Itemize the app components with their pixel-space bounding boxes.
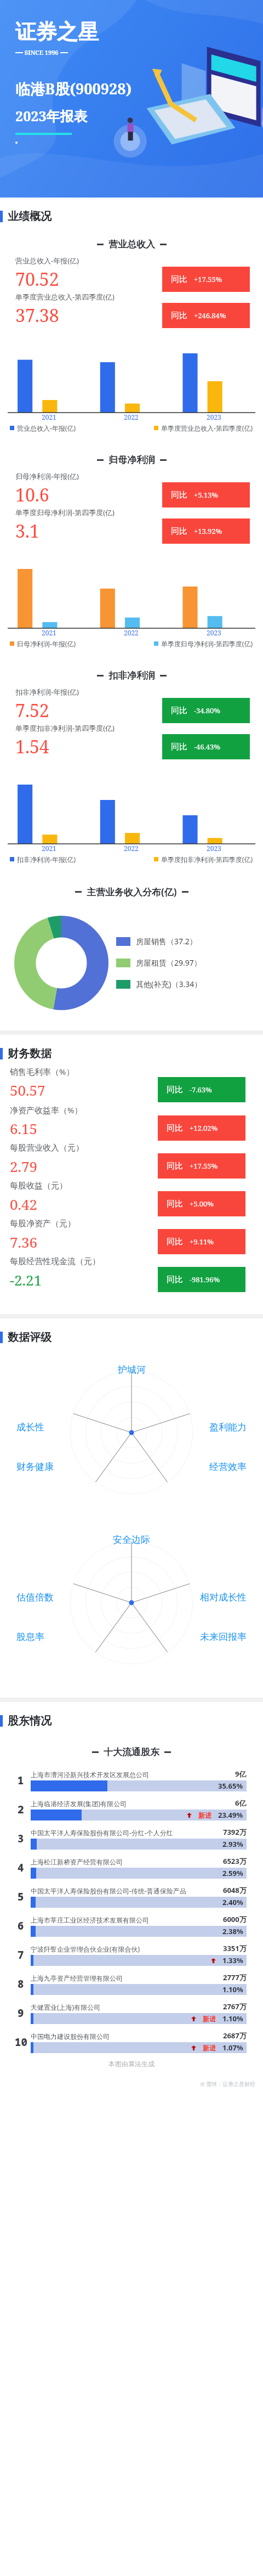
staticText: 50.57 [10,1080,45,1100]
staticText: 10.6 [15,483,49,507]
staticText: 相对成长性 [200,1592,247,1603]
button[interactable]: 同比 [162,698,250,723]
staticText: 1 [18,1773,24,1788]
staticText: 10 [15,2035,27,2049]
staticText: 估值倍数 [16,1592,54,1603]
staticText: 证券之星 [15,19,99,45]
staticText: +17.55% [194,274,222,284]
button[interactable]: 同比 [162,267,250,292]
staticText: +17.55% [190,1161,218,1171]
staticText: 同比 [167,1085,183,1095]
button[interactable]: 2 [11,1795,247,1824]
staticText: 单季度扣非净利润-第四季度(亿) [15,723,115,733]
staticText: 3351万 [223,1943,247,1953]
staticText: 1.10% [222,1985,243,1994]
button[interactable]: 6 [11,1911,247,1940]
staticText: -7.63% [190,1085,212,1095]
staticText: 盈利能力 [209,1422,247,1433]
staticText: 财务数据 [8,1047,52,1061]
staticText: 单季度营业总收入-第四季度(亿) [15,292,115,302]
staticText: 同比 [171,311,187,321]
staticText: 数据评级 [8,1331,52,1344]
staticText: 上海松江新桥资产经营有限公司 [31,1858,220,1866]
staticText: 同比 [167,1161,183,1171]
button[interactable]: 同比 [162,518,250,544]
staticText: 2022 [124,844,139,853]
button[interactable]: 8 [11,1969,247,1998]
staticText: 3 [18,1831,24,1846]
staticText: 同比 [171,706,187,716]
staticText: 上海市漕河泾新兴技术开发区发展总公司 [31,1771,232,1779]
staticText: 归母净利润-年报(亿) [17,639,76,648]
staticText: 7 [18,1948,24,1962]
staticText: 2.59% [222,1868,243,1878]
staticText: 上海九亭资产经营管理有限公司 [31,1974,220,1982]
staticText: 35.65% [218,1781,243,1791]
button[interactable]: 同比 [158,1115,245,1141]
staticText: 2.40% [222,1897,243,1907]
button[interactable]: 同比 [158,1191,245,1216]
staticText: 2021 [42,844,56,853]
button[interactable]: 10 [11,2027,247,2056]
staticText: 上海市莘庄工业区经济技术发展有限公司 [31,1916,220,1924]
staticText: 营业总收入 [108,239,155,250]
staticText: 同比 [167,1123,183,1134]
staticText: +12.02% [190,1123,218,1133]
staticText: 6000万 [223,1914,247,1924]
staticText: 业绩概况 [8,210,52,223]
staticText: 7.52 [15,698,49,723]
button[interactable]: 同比 [162,734,250,759]
staticText: 新进 [198,1811,211,1819]
staticText: 同比 [171,526,187,537]
staticText: 7.36 [10,1232,38,1252]
button[interactable]: 同比 [158,1153,245,1179]
staticText: 每股净资产（元） [10,1219,76,1229]
staticText: 净资产收益率（%） [10,1104,83,1115]
staticText: 中国太平洋人寿保险股份有限公司-传统-普通保险产品 [31,1886,220,1895]
button[interactable]: 同比 [162,303,250,328]
staticText: 营业总收入-年报(亿) [17,424,76,432]
button[interactable]: 7 [11,1940,247,1969]
staticText: +5.00% [190,1199,214,1209]
staticText: 未来回报率 [200,1631,247,1643]
staticText: 单季度营业总收入-第四季度(亿) [161,424,253,432]
staticText: 中国太平洋人寿保险股份有限公司-分红-个人分红 [31,1828,220,1837]
staticText: 成长性 [16,1422,44,1433]
staticText: 房屋租赁（29.97） [136,957,202,968]
staticText: 房屋销售（37.2） [136,936,197,946]
staticText: +13.92% [194,526,222,536]
staticText: 2777万 [223,1972,247,1982]
button[interactable]: 5 [11,1882,247,1911]
staticText: 7392万 [223,1827,247,1837]
staticText: 天健置业(上海)有限公司 [31,2003,220,2011]
staticText: +246.84% [194,311,226,320]
staticText: -981.96% [190,1275,220,1284]
button[interactable]: 同比 [158,1267,245,1292]
button[interactable]: 同比 [162,482,250,508]
staticText: 6亿 [235,1798,247,1808]
staticText: 2.93% [222,1839,243,1849]
staticText: 2023 [207,844,221,853]
staticText: 6.15 [10,1119,38,1138]
staticText: 2023 [207,628,221,637]
button[interactable]: 9 [11,1998,247,2027]
staticText: 经营效率 [209,1461,247,1473]
button[interactable]: 3 [11,1824,247,1853]
staticText: 每股营业收入（元） [10,1143,84,1153]
button[interactable]: 4 [11,1853,247,1882]
staticText: 中国电力建设股份有限公司 [31,2032,220,2040]
staticText: 9亿 [235,1769,247,1779]
button[interactable]: 同比 [158,1229,245,1254]
staticText: 股息率 [16,1631,44,1643]
staticText: 6048万 [223,1885,247,1895]
button[interactable]: 同比 [158,1077,245,1102]
staticText: 8 [18,1977,24,1991]
staticText: 9 [18,2006,24,2020]
button[interactable]: 1 [11,1766,247,1795]
staticText: 归母净利润 [108,454,155,466]
staticText: 5 [18,1890,24,1904]
staticText: 扣非净利润 [108,670,155,681]
staticText: +9.11% [190,1237,214,1247]
staticText: +5.13% [194,490,218,500]
staticText: 3.1 [15,519,39,543]
